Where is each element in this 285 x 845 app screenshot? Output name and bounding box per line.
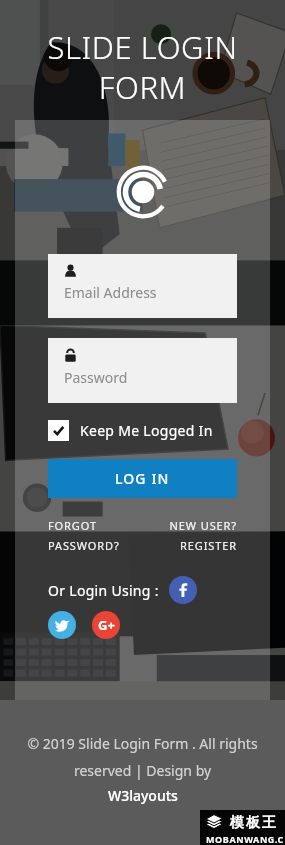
staticText: SLIDE LOGIN FORM: [18, 26, 267, 108]
staticText: G+: [98, 616, 115, 634]
staticText: MOBANWANG.COM: [206, 833, 285, 845]
other: Logo: [118, 167, 168, 217]
button[interactable]: W3layouts: [108, 786, 178, 805]
staticText: © 2019 Slide Login Form . All rights res…: [20, 734, 265, 780]
staticText: LOG IN: [115, 469, 170, 488]
staticText: Or Login Using :: [48, 581, 159, 600]
staticText: Password: [64, 368, 128, 387]
staticText: 模板王: [229, 814, 277, 832]
button[interactable]: Login with Facebook: [169, 576, 197, 604]
button[interactable]: Login with Twitter: [48, 611, 76, 639]
button[interactable]: LOG IN: [48, 459, 237, 498]
staticText: Email Address: [64, 283, 157, 302]
button[interactable]: NEW USER? REGISTER: [133, 518, 237, 554]
button[interactable]: Login with Google Plus: [92, 611, 120, 639]
button[interactable]: Email Address: [48, 254, 237, 318]
staticText: Keep Me Logged In: [80, 421, 213, 440]
button[interactable]: FORGOT PASSWORD?: [48, 518, 132, 554]
button[interactable]: Keep Me Logged In: [48, 420, 237, 441]
button[interactable]: Password: [48, 338, 237, 403]
